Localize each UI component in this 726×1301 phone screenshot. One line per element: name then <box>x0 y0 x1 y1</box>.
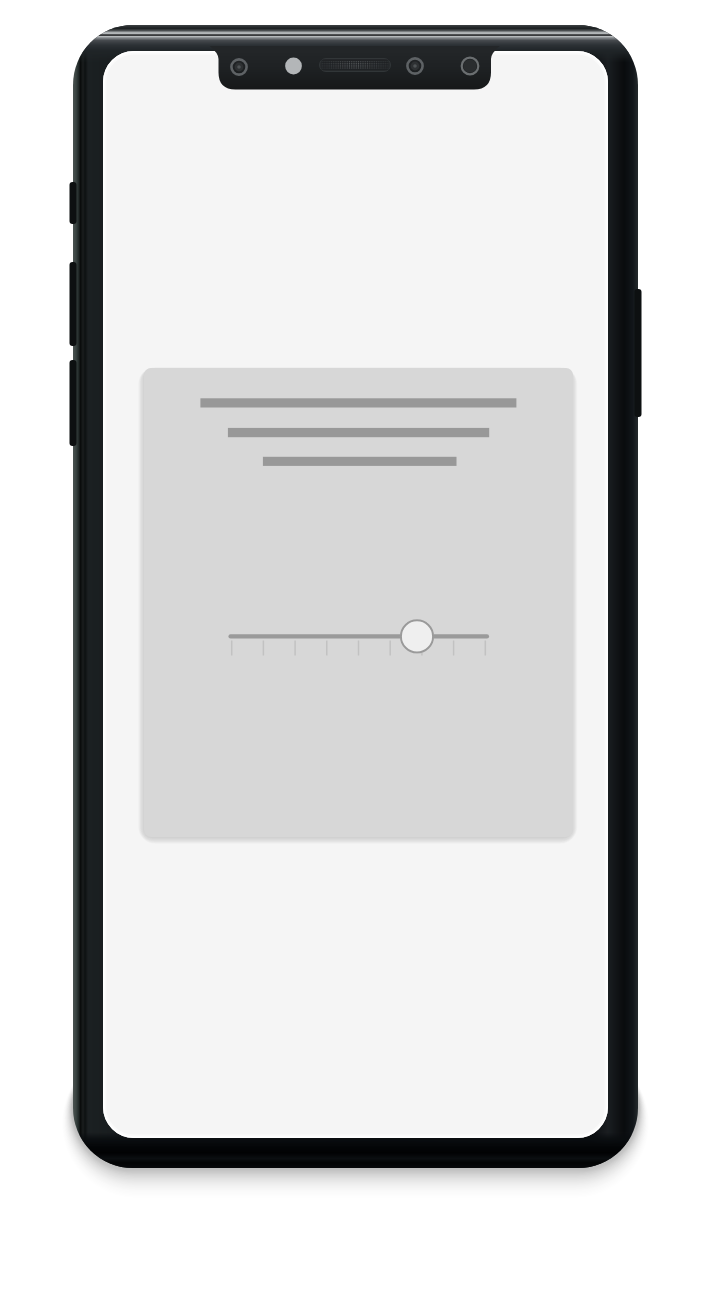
button[interactable]: Loading text line <box>263 451 457 472</box>
button[interactable]: Value slider <box>231 617 488 657</box>
button[interactable]: Loading text line <box>228 422 489 443</box>
button[interactable]: Slider thumb <box>400 619 434 653</box>
button[interactable]: Content placeholder card <box>144 368 573 837</box>
button[interactable]: Loading text line <box>200 392 516 413</box>
